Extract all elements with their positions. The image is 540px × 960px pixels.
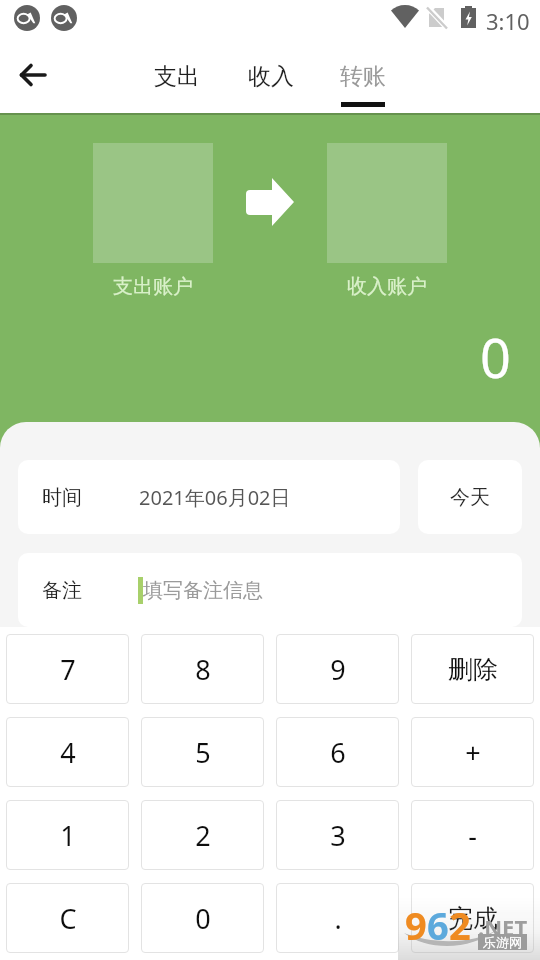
staticText: 完成 [448,903,498,934]
staticText: 时间 [42,485,82,510]
staticText: 3:10 [486,6,530,36]
staticText: 0 [480,320,511,394]
staticText: 9 [330,651,346,688]
button[interactable]: 0 [141,883,264,953]
staticText: 删除 [448,654,498,685]
staticText: - [468,817,477,854]
button[interactable]: 7 [6,634,129,704]
staticText: 2 [195,817,211,854]
staticText: 7 [60,651,76,688]
staticText: + [465,734,481,771]
staticText: 5 [195,734,211,771]
button[interactable]: - [411,800,534,870]
button[interactable]: + [411,717,534,787]
button[interactable]: 3 [276,800,399,870]
staticText: 转账 [340,62,386,91]
button[interactable]: 支出 [146,62,207,107]
staticText: 1 [60,817,76,854]
staticText: 2021年06月02日 [139,484,291,511]
button[interactable]: 备注 [18,553,522,627]
button[interactable]: 转账 [332,62,393,107]
staticText: 3 [330,817,346,854]
button[interactable]: 完成 [411,883,534,953]
staticText: 乐游网 [483,934,522,950]
staticText: 支出 [154,62,200,91]
staticText: 填写备注信息 [143,578,263,603]
button[interactable]: 9 [276,634,399,704]
staticText: 备注 [42,578,82,603]
staticText: 6 [427,899,449,951]
staticText: 2 [449,899,471,951]
staticText: 收入账户 [347,274,427,299]
staticText: 今天 [450,485,490,510]
button[interactable]: Back [11,53,55,97]
button[interactable]: 今天 [418,460,522,534]
button[interactable]: 5 [141,717,264,787]
button[interactable]: 6 [276,717,399,787]
button[interactable]: 收入 [240,62,301,107]
staticText: 4 [60,734,76,771]
staticText: . [334,900,342,937]
staticText: .NET [478,912,528,942]
button[interactable]: 4 [6,717,129,787]
button[interactable]: 1 [6,800,129,870]
staticText: 8 [195,651,211,688]
staticText: 收入 [248,62,294,91]
button[interactable]: 8 [141,634,264,704]
staticText: 9 [405,899,427,951]
staticText: C [59,900,77,937]
staticText: 6 [330,734,346,771]
button[interactable]: 时间 [18,460,400,534]
button[interactable]: 删除 [411,634,534,704]
staticText: 支出账户 [113,274,193,299]
staticText: 0 [195,900,211,937]
button[interactable]: . [276,883,399,953]
button[interactable]: 2 [141,800,264,870]
button[interactable]: C [6,883,129,953]
